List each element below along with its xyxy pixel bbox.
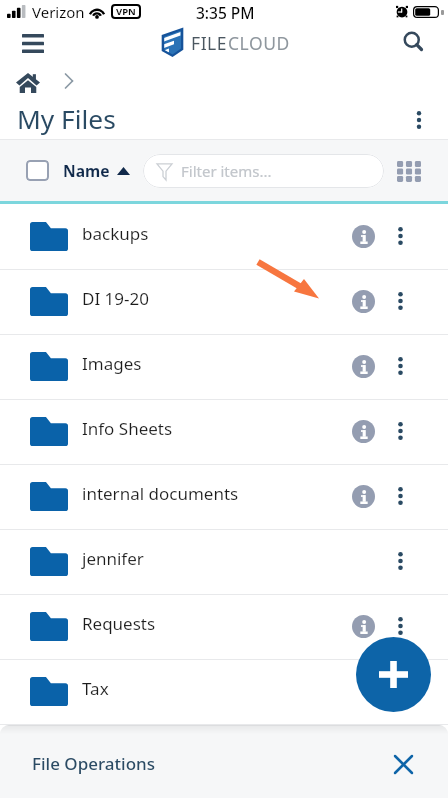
staticText: Requests bbox=[82, 612, 156, 635]
staticText: Images bbox=[82, 352, 142, 375]
button[interactable]: Info bbox=[352, 615, 375, 638]
button[interactable]: Info bbox=[352, 420, 375, 443]
button[interactable]: jennifer bbox=[0, 530, 448, 594]
button[interactable]: Info bbox=[352, 225, 375, 248]
button[interactable]: Info Sheets bbox=[0, 400, 448, 464]
button[interactable]: Close bbox=[387, 748, 419, 780]
button[interactable]: internal documents bbox=[0, 465, 448, 529]
staticText: Name bbox=[63, 160, 110, 181]
button[interactable]: Row menu bbox=[389, 612, 411, 640]
button[interactable]: Row menu bbox=[389, 417, 411, 445]
button[interactable]: DI 19-20 bbox=[0, 270, 448, 334]
button[interactable]: Search bbox=[396, 24, 430, 58]
staticText: CLOUD bbox=[228, 31, 290, 55]
button[interactable]: Name bbox=[63, 159, 130, 182]
button[interactable]: Images bbox=[0, 335, 448, 399]
staticText: Filter items... bbox=[181, 161, 272, 181]
staticText: DI 19-20 bbox=[82, 287, 149, 310]
button[interactable]: Select all bbox=[26, 160, 49, 181]
staticText: File Operations bbox=[32, 752, 155, 775]
button[interactable]: Info bbox=[352, 485, 375, 508]
button[interactable]: Menu bbox=[14, 24, 52, 62]
button[interactable]: Add bbox=[356, 637, 431, 712]
button[interactable]: Row menu bbox=[389, 222, 411, 250]
staticText: backups bbox=[82, 222, 149, 245]
staticText: VPN bbox=[116, 5, 136, 18]
button[interactable]: Home bbox=[14, 69, 42, 97]
button[interactable]: backups bbox=[0, 205, 448, 269]
button[interactable]: More options bbox=[405, 106, 433, 134]
button[interactable]: Row menu bbox=[389, 547, 411, 575]
button[interactable]: Tax bbox=[0, 660, 448, 724]
button[interactable]: Row menu bbox=[389, 482, 411, 510]
staticText: 3:35 PM bbox=[196, 2, 255, 23]
button[interactable]: Row menu bbox=[389, 677, 411, 705]
button[interactable]: Requests bbox=[0, 595, 448, 659]
button[interactable]: Info bbox=[352, 355, 375, 378]
staticText: Tax bbox=[82, 677, 109, 700]
staticText: Info Sheets bbox=[82, 417, 173, 440]
staticText: jennifer bbox=[82, 547, 144, 570]
button[interactable]: Row menu bbox=[389, 352, 411, 380]
button[interactable]: Filter items... bbox=[143, 154, 384, 188]
staticText: Verizon bbox=[32, 2, 85, 22]
button[interactable]: Row menu bbox=[389, 287, 411, 315]
staticText: FILE bbox=[191, 31, 228, 55]
staticText: My Files bbox=[17, 101, 116, 137]
button[interactable]: Info bbox=[352, 290, 375, 313]
staticText: internal documents bbox=[82, 482, 239, 505]
button[interactable]: Grid view bbox=[394, 156, 424, 186]
